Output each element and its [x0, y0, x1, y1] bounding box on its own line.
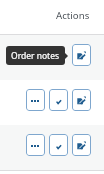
button[interactable]: Complete order	[49, 134, 68, 156]
button[interactable]: Order notes	[72, 134, 91, 156]
button[interactable]: Order notes	[72, 89, 91, 111]
button[interactable]: Complete order	[49, 89, 68, 111]
button[interactable]: More actions	[26, 89, 45, 111]
button[interactable]: Order notes	[72, 44, 91, 66]
staticText: Actions	[56, 9, 90, 22]
staticText: Order notes	[11, 50, 60, 62]
button[interactable]: More actions	[26, 134, 45, 156]
